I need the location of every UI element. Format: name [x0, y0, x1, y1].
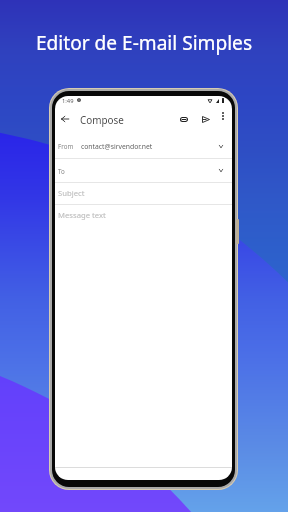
button[interactable] [55, 183, 232, 204]
staticText: To [58, 167, 65, 175]
staticText: From [58, 142, 74, 150]
button[interactable] [55, 134, 232, 158]
staticText: Editor de E-mail Simples [0, 30, 288, 56]
button[interactable] [55, 159, 232, 182]
button[interactable]: More options [218, 111, 228, 121]
staticText: Message text [58, 210, 106, 220]
staticText: Subject [58, 188, 85, 198]
staticText: 1:49 [62, 97, 74, 105]
staticText: Compose [80, 113, 124, 126]
staticText: contact@sirvendor.net [81, 142, 153, 151]
button[interactable]: Attach file [177, 112, 191, 126]
button[interactable]: Back [58, 112, 71, 125]
button[interactable]: Send [199, 112, 213, 126]
